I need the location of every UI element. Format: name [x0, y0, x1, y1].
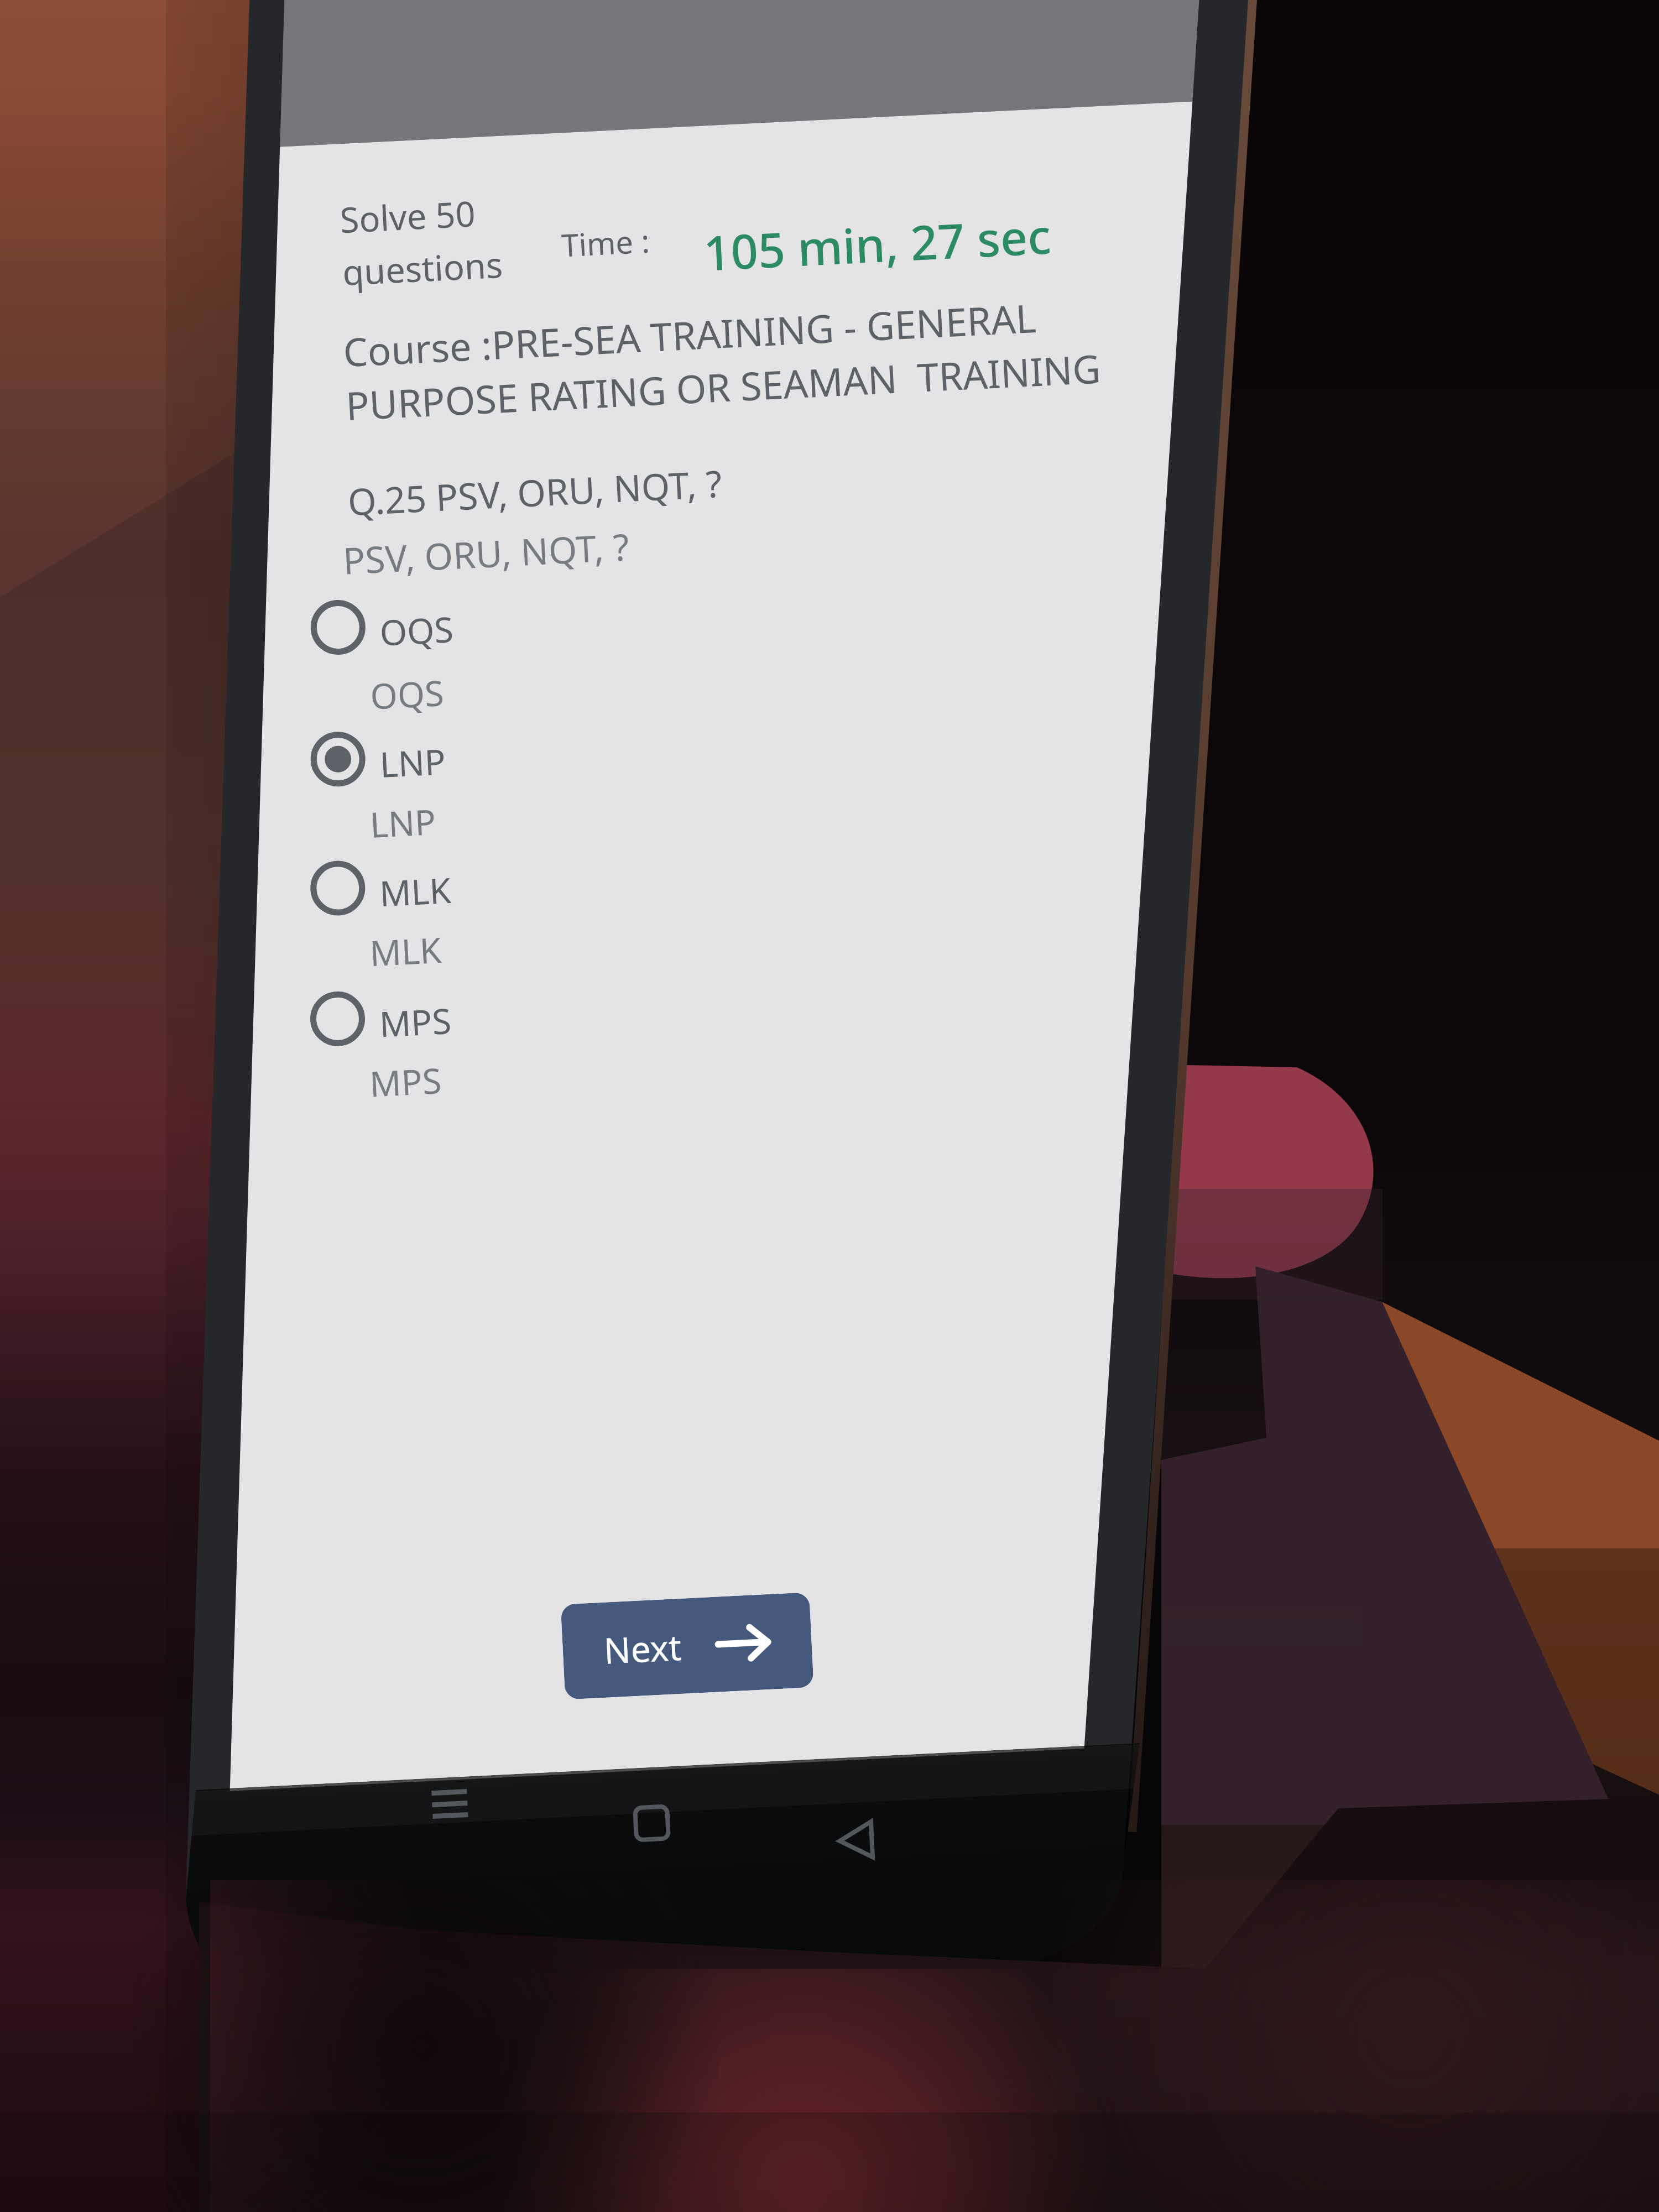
staticText: OQS — [369, 669, 445, 720]
staticText: LNP — [379, 737, 447, 788]
staticText: MPS — [368, 1056, 443, 1107]
staticText: MLK — [378, 866, 453, 917]
staticText: LNP — [369, 797, 437, 848]
staticText: Next — [603, 1622, 683, 1674]
staticText: PSV, ORU, NQT, ? — [342, 521, 630, 585]
staticText: Solve 50 questions — [339, 188, 504, 295]
button[interactable]: MLK — [294, 833, 608, 932]
staticText: Course :PRE-SEA TRAINING - GENERAL PURPO… — [342, 288, 1102, 432]
button[interactable]: Next — [561, 1592, 814, 1700]
staticText: 105 min, 27 sec — [702, 203, 1053, 285]
button[interactable]: Home — [611, 1783, 692, 1864]
button[interactable]: OQS — [295, 573, 608, 671]
staticText: OQS — [379, 605, 454, 656]
staticText: MPS — [378, 997, 452, 1048]
button[interactable]: Back — [817, 1800, 898, 1881]
staticText: Time : — [560, 219, 651, 266]
staticText: MLK — [369, 926, 443, 977]
button[interactable]: LNP — [294, 704, 608, 803]
button[interactable]: MPS — [294, 964, 608, 1062]
button[interactable]: Menu — [409, 1763, 490, 1844]
staticText: Q.25 PSV, ORU, NQT, ? — [347, 458, 723, 526]
